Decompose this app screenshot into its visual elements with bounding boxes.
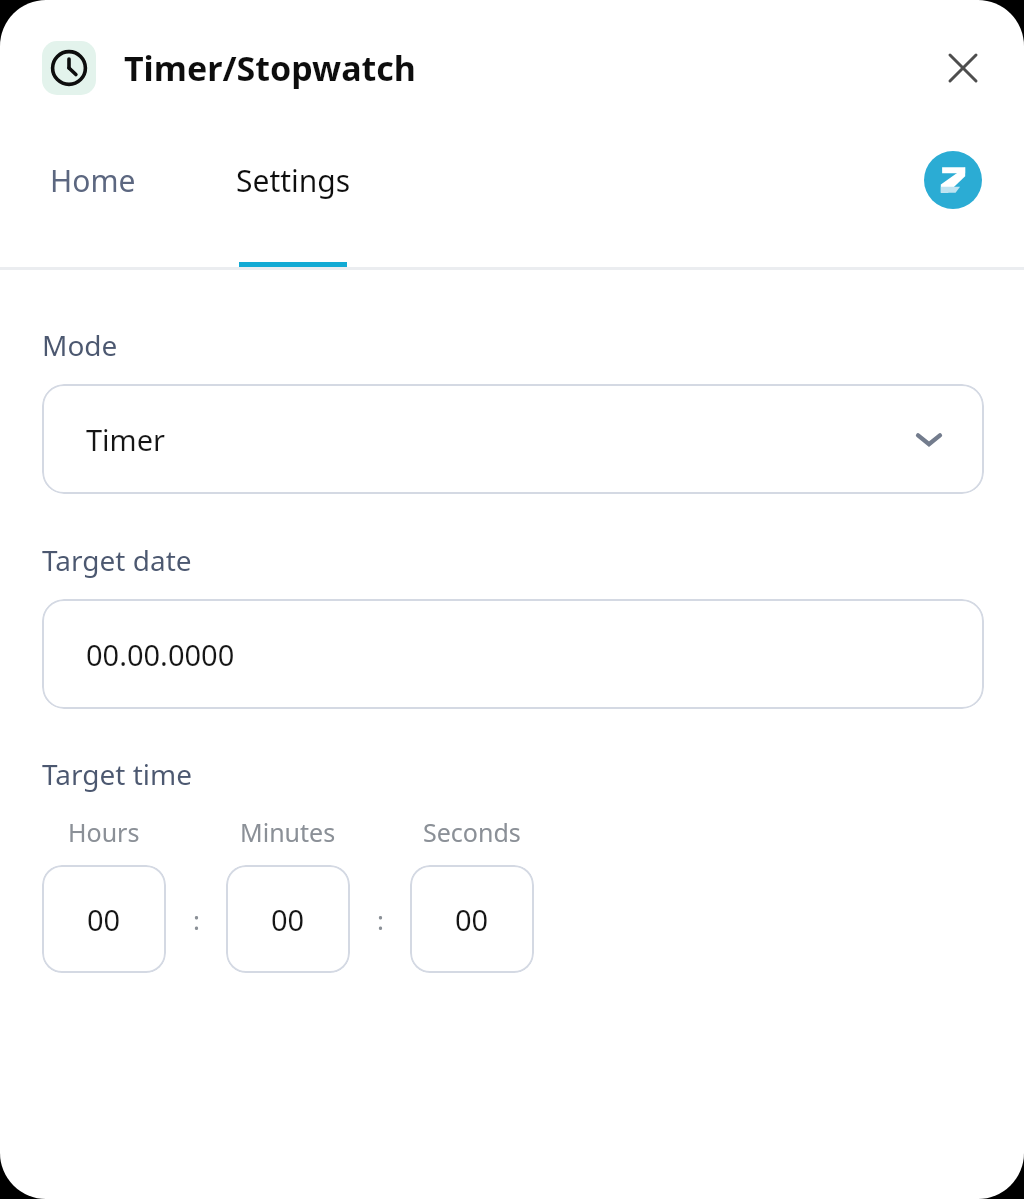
button[interactable]: Settings bbox=[186, 136, 400, 267]
button[interactable]: Close bbox=[934, 39, 992, 97]
button[interactable]: Timer bbox=[42, 384, 984, 494]
staticText: Target date bbox=[42, 541, 192, 579]
button[interactable]: 00.00.0000 bbox=[42, 599, 984, 709]
staticText: 00 bbox=[87, 900, 121, 939]
staticText: Timer bbox=[86, 420, 166, 459]
staticText: Target time bbox=[42, 755, 193, 793]
staticText: 00 bbox=[455, 900, 489, 939]
staticText: Timer/Stopwatch bbox=[124, 45, 416, 91]
button[interactable]: Home bbox=[0, 136, 186, 267]
staticText: Hours bbox=[68, 815, 140, 849]
staticText: Mode bbox=[42, 326, 118, 364]
button[interactable]: 00 bbox=[42, 865, 166, 973]
staticText: Home bbox=[50, 160, 136, 201]
staticText: : bbox=[193, 902, 200, 937]
staticText: 00.00.0000 bbox=[86, 635, 235, 674]
staticText: Seconds bbox=[423, 815, 521, 849]
button[interactable]: 00 bbox=[410, 865, 534, 973]
staticText: Minutes bbox=[240, 815, 336, 849]
button[interactable]: Account bbox=[924, 151, 982, 209]
staticText: Settings bbox=[236, 160, 351, 201]
button[interactable]: 00 bbox=[226, 865, 350, 973]
staticText: 00 bbox=[271, 900, 305, 939]
staticText: : bbox=[377, 902, 384, 937]
